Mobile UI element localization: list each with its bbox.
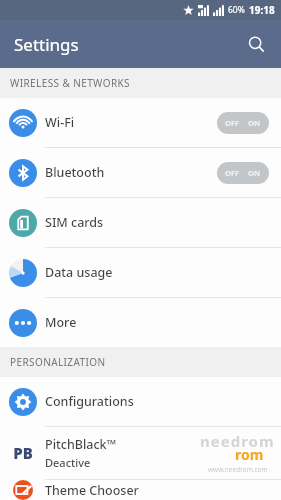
staticText: www.needrom.com [208,465,268,474]
button[interactable]: OFF [217,112,269,134]
staticText: More [45,314,77,331]
staticText: ON [248,118,261,128]
staticText: needrom [200,431,275,451]
button[interactable]: Search [239,27,273,61]
staticText: Configurations [45,393,134,410]
staticText: Data usage [45,264,113,281]
staticText: OFF [225,118,240,128]
staticText: OFF [225,168,240,178]
staticText: PB [13,443,33,463]
button[interactable]: Configurations [0,377,281,427]
button[interactable]: More [0,298,281,347]
staticText: WIRELESS & NETWORKS [10,76,130,90]
button[interactable]: Wi-Fi [0,98,281,148]
staticText: Deactive [45,455,91,470]
button[interactable]: SIM cards [0,198,281,248]
staticText: PERSONALIZATION [10,355,106,369]
staticText: PitchBlack™ [45,436,117,453]
staticText: SIM cards [45,214,104,231]
staticText: Settings [14,33,79,56]
staticText: Theme Chooser [45,482,139,499]
staticText: ON [248,168,261,178]
button[interactable]: PB [0,427,281,480]
staticText: 19:18 [249,3,275,17]
staticText: 60% [228,4,245,16]
staticText: Wi-Fi [45,114,75,131]
button[interactable]: Theme Chooser [0,480,281,500]
button[interactable]: Data usage [0,248,281,298]
staticText: rom [235,445,264,464]
button[interactable]: Bluetooth [0,148,281,198]
staticText: Bluetooth [45,164,105,181]
button[interactable]: OFF [217,162,269,184]
